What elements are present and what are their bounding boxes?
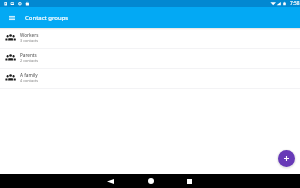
staticText: 4 contacts bbox=[20, 78, 39, 83]
button[interactable]: A family bbox=[0, 68, 300, 88]
button[interactable]: Home bbox=[132, 174, 169, 188]
button[interactable]: Menu bbox=[6, 12, 18, 24]
button[interactable]: Add group bbox=[278, 150, 295, 167]
staticText: Workers bbox=[20, 32, 39, 38]
staticText: Parents bbox=[20, 52, 37, 58]
button[interactable]: Back bbox=[92, 174, 129, 188]
staticText: A family bbox=[20, 72, 38, 78]
button[interactable]: Recents bbox=[171, 174, 208, 188]
staticText: 3 contacts bbox=[20, 38, 39, 43]
button[interactable]: Workers bbox=[0, 28, 300, 48]
staticText: 2 contacts bbox=[20, 58, 39, 63]
staticText: Contact groups bbox=[25, 14, 69, 22]
staticText: 7:58 bbox=[290, 0, 300, 7]
button[interactable]: Parents bbox=[0, 48, 300, 68]
